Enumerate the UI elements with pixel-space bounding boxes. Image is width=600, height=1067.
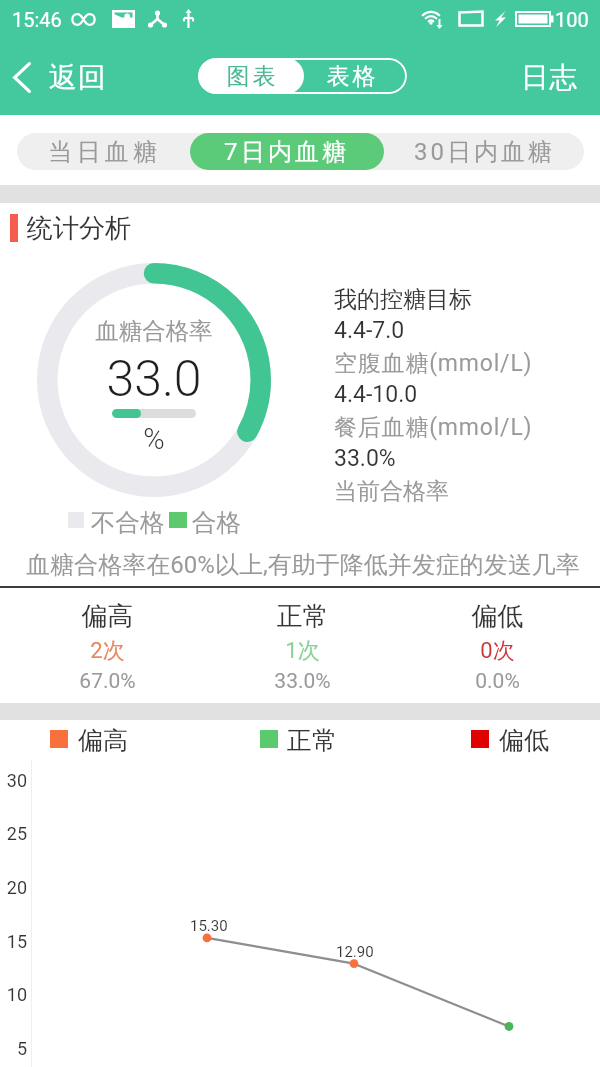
button[interactable]: 表格	[304, 58, 407, 94]
staticText: 餐后血糖(mmol/L)	[334, 413, 533, 442]
staticText: 血糖合格率	[37, 316, 271, 346]
staticText: 33.0	[37, 350, 271, 409]
staticText: 血糖合格率在60%以上,有助于降低并发症的发送几率	[3, 550, 600, 580]
button[interactable]: 日志	[505, 42, 595, 112]
staticText: 0.0%	[400, 669, 595, 694]
button[interactable]: 正常	[205, 587, 400, 703]
staticText: 我的控糖目标	[334, 285, 472, 314]
staticText: %	[37, 422, 271, 456]
staticText: 30日内血糖	[414, 137, 555, 167]
staticText: 正常	[205, 600, 400, 633]
staticText: 33.0%	[334, 445, 396, 472]
staticText: 偏低	[499, 725, 549, 756]
staticText: 偏低	[400, 600, 595, 633]
staticText: 偏高	[78, 725, 128, 756]
staticText: 当日血糖	[48, 137, 162, 167]
staticText: 4.4-10.0	[334, 381, 418, 408]
staticText: 不合格	[91, 507, 165, 538]
staticText: 15:46	[12, 8, 62, 31]
staticText: 当前合格率	[334, 477, 449, 506]
staticText: 30	[0, 770, 27, 791]
button[interactable]: 7日内血糖	[190, 133, 384, 170]
staticText: 表格	[325, 62, 377, 91]
staticText: 正常	[287, 725, 337, 756]
staticText: 5	[0, 1038, 27, 1059]
button[interactable]: 30日内血糖	[384, 133, 584, 170]
button[interactable]: 返回	[0, 42, 121, 112]
staticText: 空腹血糖(mmol/L)	[334, 349, 533, 378]
staticText: 2次	[10, 637, 205, 665]
staticText: 1次	[205, 637, 400, 665]
staticText: 日志	[521, 60, 579, 95]
staticText: 20	[0, 877, 27, 898]
staticText: 12.90	[336, 943, 374, 961]
staticText: 15	[0, 931, 27, 952]
staticText: 25	[0, 823, 27, 844]
staticText: 100	[555, 8, 589, 31]
staticText: 偏高	[10, 600, 205, 633]
staticText: 返回	[49, 60, 107, 95]
staticText: 33.0%	[205, 669, 400, 694]
staticText: 合格	[192, 507, 241, 538]
button[interactable]: 偏低	[400, 587, 595, 703]
staticText: 7日内血糖	[224, 137, 350, 167]
staticText: 15.30	[190, 917, 228, 935]
button[interactable]: 偏高	[10, 587, 205, 703]
staticText: 4.4-7.0	[334, 317, 405, 344]
staticText: 0次	[400, 637, 595, 665]
staticText: 10	[0, 984, 27, 1005]
staticText: 67.0%	[10, 669, 205, 694]
button[interactable]: 当日血糖	[17, 133, 192, 170]
staticText: 统计分析	[27, 212, 131, 245]
button[interactable]: 图表	[198, 58, 304, 94]
staticText: 图表	[225, 62, 277, 91]
